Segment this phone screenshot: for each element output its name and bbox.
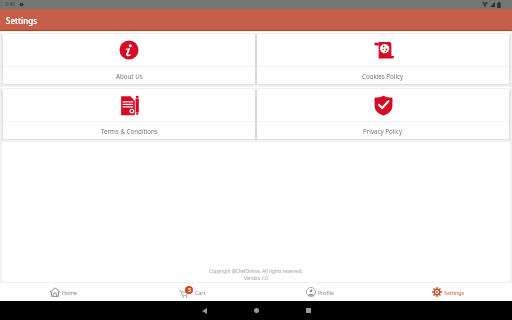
staticText: 3:40 (5, 1, 15, 8)
staticText: Settings (6, 15, 38, 26)
staticText: Terms & Conditions (101, 127, 158, 135)
staticText: Home (62, 289, 78, 296)
button[interactable]: Recent apps (282, 301, 334, 320)
button[interactable]: Profile (256, 283, 384, 301)
button[interactable]: Privacy Policy (257, 89, 509, 139)
button[interactable]: Settings (384, 283, 512, 301)
staticText: Settings (444, 289, 465, 296)
button[interactable]: 3 (128, 283, 256, 301)
staticText: Cart (195, 289, 206, 296)
button[interactable]: About Us (3, 34, 255, 84)
button[interactable]: Terms & Conditions (3, 89, 255, 139)
staticText: Copyright @ChefOnline. All rights reserv… (209, 268, 303, 274)
staticText: Privacy Policy (363, 127, 403, 135)
staticText: Version 1.0 (244, 275, 268, 281)
button[interactable]: Cookies Policy (257, 34, 509, 84)
button[interactable]: Back (178, 301, 230, 320)
button[interactable]: Home (0, 283, 128, 301)
staticText: 3 (188, 287, 191, 294)
staticText: Profile (318, 289, 335, 296)
staticText: About Us (116, 72, 143, 80)
button[interactable]: Home (230, 301, 282, 320)
staticText: Cookies Policy (362, 72, 404, 80)
